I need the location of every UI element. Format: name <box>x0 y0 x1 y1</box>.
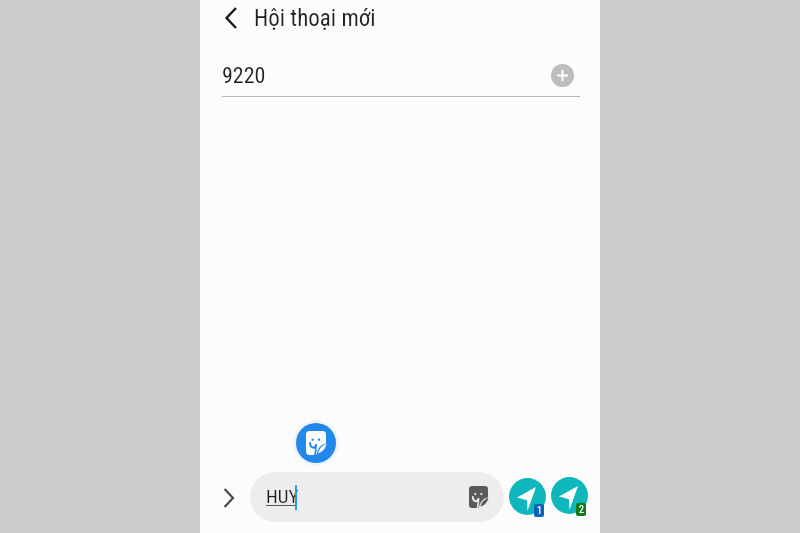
button[interactable]: Send with SIM 2 <box>551 477 589 515</box>
button[interactable]: Recipient field <box>222 48 542 96</box>
staticText: 1 <box>537 505 542 517</box>
staticText: 9220 <box>222 63 266 89</box>
button[interactable]: Send with SIM 1 <box>509 478 547 516</box>
button[interactable]: Back <box>214 1 248 35</box>
button[interactable]: Stickers <box>293 420 339 466</box>
button[interactable]: HUY <box>250 472 504 522</box>
staticText: 2 <box>579 504 584 516</box>
staticText: HUY <box>266 485 299 507</box>
staticText: Hội thoại mới <box>254 5 376 32</box>
button[interactable]: Expand <box>214 484 242 512</box>
button[interactable]: Add recipient <box>551 64 574 87</box>
button[interactable]: Stickers <box>467 486 489 508</box>
